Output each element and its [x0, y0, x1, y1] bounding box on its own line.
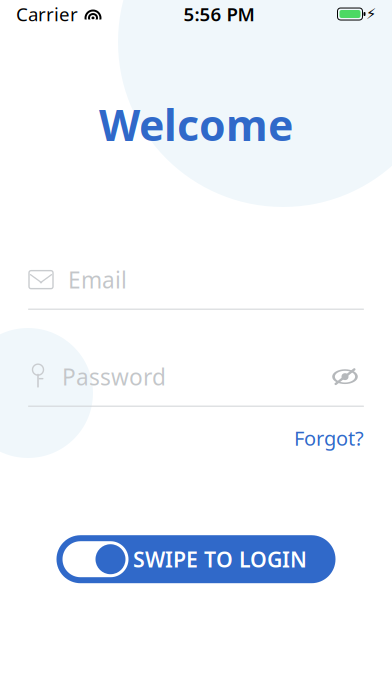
staticText: Welcome	[99, 96, 293, 153]
staticText: ⚡︎	[366, 6, 376, 22]
staticText: 5:56 PM	[183, 2, 254, 26]
staticText: Password	[62, 362, 166, 392]
button[interactable]: Swipe to login	[56, 535, 335, 583]
staticText: SWIPE TO LOGIN	[133, 545, 307, 573]
button[interactable]: Show password	[326, 360, 364, 394]
staticText: Carrier	[16, 2, 78, 26]
staticText: Email	[68, 265, 127, 295]
staticText: Forgot?	[294, 425, 364, 451]
button[interactable]: Forgot?	[294, 419, 364, 457]
